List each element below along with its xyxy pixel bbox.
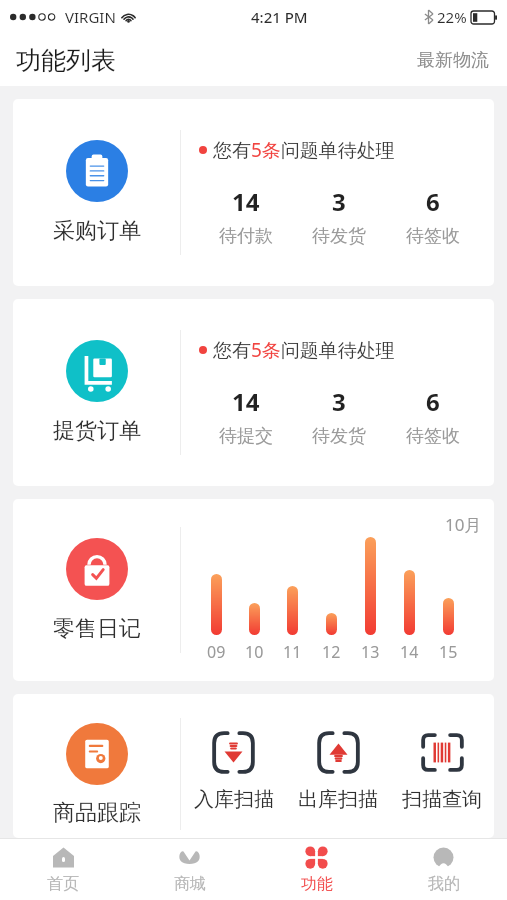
button[interactable]: 6 bbox=[386, 185, 480, 248]
button[interactable]: 功能 bbox=[253, 838, 380, 900]
button[interactable]: 14 bbox=[199, 185, 292, 248]
staticText: 14 bbox=[232, 385, 260, 418]
staticText: 您有5条问题单待处理 bbox=[213, 337, 395, 363]
staticText: 3 bbox=[332, 385, 346, 418]
staticText: 13 bbox=[361, 641, 380, 663]
button[interactable]: 提货订单 bbox=[13, 299, 494, 486]
button[interactable]: 商品跟踪 bbox=[13, 694, 180, 838]
staticText: 采购订单 bbox=[53, 217, 141, 245]
staticText: 出库扫描 bbox=[298, 787, 378, 812]
button[interactable]: 出库扫描 bbox=[286, 694, 390, 838]
button[interactable]: 最新物流 bbox=[413, 45, 493, 76]
button[interactable]: 我的 bbox=[380, 838, 507, 900]
staticText: 待发货 bbox=[312, 425, 366, 448]
staticText: 10月 bbox=[445, 513, 482, 536]
staticText: 11 bbox=[283, 641, 302, 663]
button[interactable]: 扫描查询 bbox=[390, 694, 494, 838]
button[interactable]: 采购订单 bbox=[13, 99, 494, 286]
button[interactable]: 首页 bbox=[0, 838, 126, 900]
staticText: 15 bbox=[439, 641, 458, 663]
staticText: VIRGIN bbox=[65, 7, 116, 27]
staticText: 我的 bbox=[428, 874, 460, 894]
staticText: 您有5条问题单待处理 bbox=[213, 137, 395, 163]
button[interactable]: 6 bbox=[386, 385, 480, 448]
staticText: 6 bbox=[426, 385, 440, 418]
staticText: 10 bbox=[245, 641, 264, 663]
staticText: 功能列表 bbox=[16, 45, 116, 76]
staticText: 待签收 bbox=[406, 225, 460, 248]
staticText: 功能 bbox=[301, 874, 333, 894]
staticText: 商品跟踪 bbox=[53, 799, 141, 827]
staticText: 提货订单 bbox=[53, 417, 141, 445]
staticText: 12 bbox=[322, 641, 341, 663]
button[interactable]: 14 bbox=[199, 385, 292, 448]
button[interactable]: 零售日记 bbox=[13, 499, 494, 681]
staticText: 待签收 bbox=[406, 425, 460, 448]
staticText: 最新物流 bbox=[417, 49, 489, 72]
button[interactable]: 入库扫描 bbox=[181, 694, 286, 838]
staticText: 零售日记 bbox=[53, 615, 141, 643]
staticText: 14 bbox=[232, 185, 260, 218]
staticText: 入库扫描 bbox=[194, 787, 274, 812]
staticText: 首页 bbox=[47, 874, 79, 894]
staticText: 商城 bbox=[174, 874, 206, 894]
staticText: 待付款 bbox=[219, 225, 273, 248]
button[interactable]: 商城 bbox=[126, 838, 253, 900]
staticText: 待提交 bbox=[219, 425, 273, 448]
button[interactable]: 3 bbox=[292, 385, 386, 448]
staticText: 4:21 PM bbox=[251, 7, 308, 27]
staticText: 扫描查询 bbox=[402, 787, 482, 812]
staticText: 09 bbox=[207, 641, 226, 663]
staticText: 14 bbox=[400, 641, 419, 663]
staticText: 3 bbox=[332, 185, 346, 218]
staticText: 6 bbox=[426, 185, 440, 218]
button[interactable]: 3 bbox=[292, 185, 386, 248]
staticText: 待发货 bbox=[312, 225, 366, 248]
staticText: 22% bbox=[437, 7, 467, 27]
